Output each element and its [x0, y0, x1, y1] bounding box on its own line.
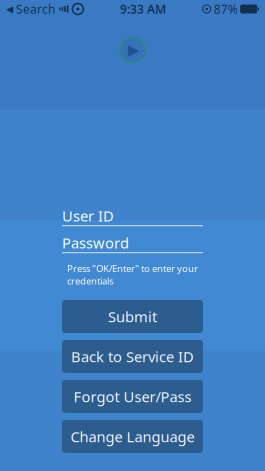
staticText: Search	[13, 1, 55, 17]
staticText: 87%	[214, 1, 238, 17]
button[interactable]: Play	[117, 35, 147, 65]
button[interactable]: Submit	[62, 300, 203, 333]
staticText: ▶	[128, 42, 139, 58]
staticText: Submit	[108, 307, 157, 326]
staticText: User ID	[62, 206, 114, 225]
button[interactable]: Password	[62, 235, 203, 253]
staticText: Password	[62, 233, 129, 252]
staticText: ◀	[6, 4, 13, 14]
button[interactable]: Forgot User/Pass	[62, 380, 203, 413]
button[interactable]: User ID	[62, 208, 203, 226]
staticText: Change Language	[70, 427, 194, 446]
button[interactable]: Back to Service ID	[62, 340, 203, 373]
staticText: Press "OK/Enter" to enter your credentia…	[67, 262, 198, 287]
staticText: Forgot User/Pass	[73, 387, 191, 406]
staticText: Back to Service ID	[71, 347, 194, 366]
button[interactable]: Change Language	[62, 420, 203, 453]
staticText: 9:33 AM	[120, 1, 166, 17]
